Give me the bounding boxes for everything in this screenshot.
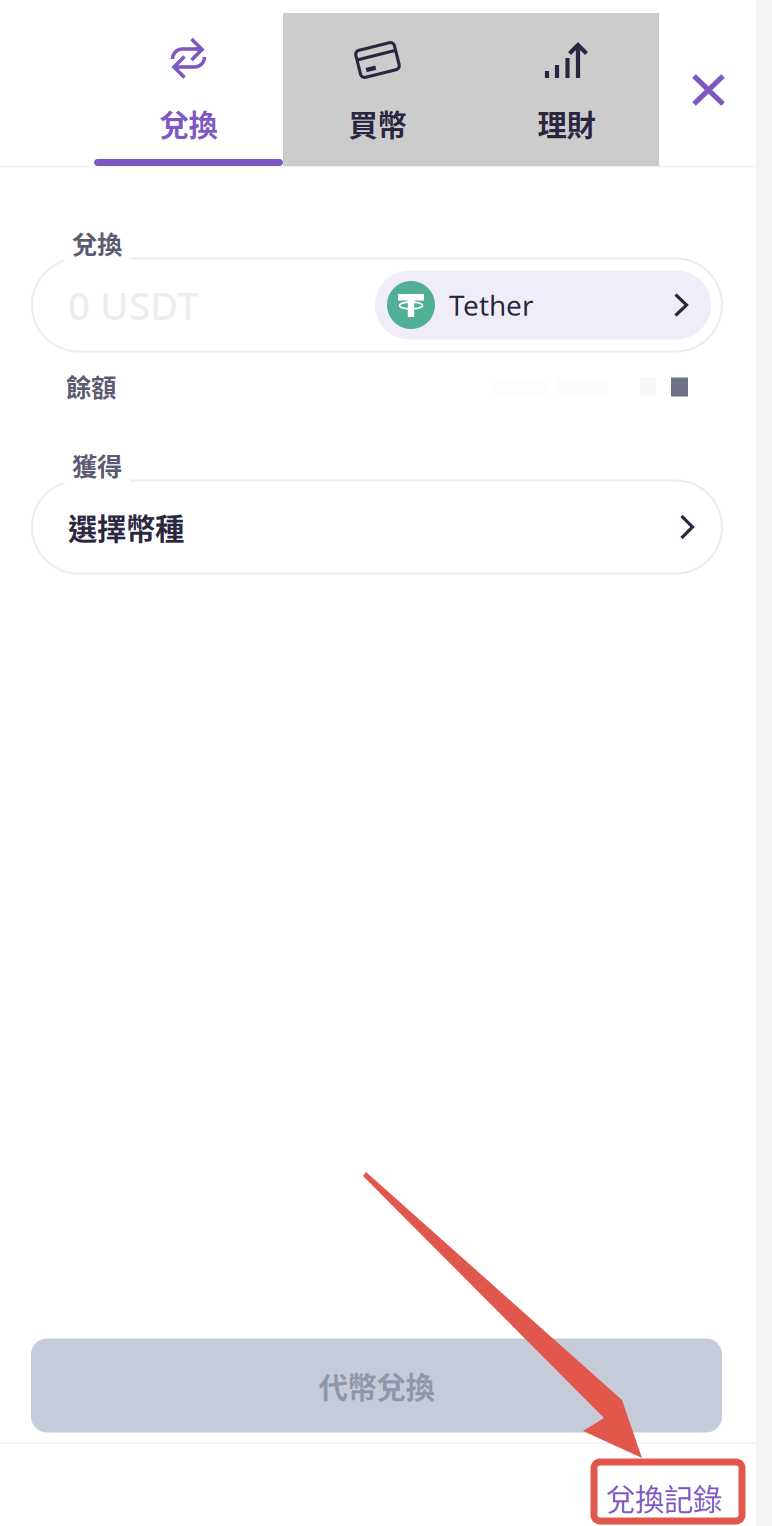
button[interactable]: 兌換 <box>94 0 283 166</box>
staticText: 兌換記錄 <box>606 1476 722 1519</box>
button[interactable]: 買幣 <box>283 0 472 166</box>
staticText: 獲得 <box>72 446 122 483</box>
button[interactable]: Close <box>661 0 756 166</box>
staticText: 餘額 <box>66 367 116 404</box>
button[interactable]: Tether <box>375 270 711 339</box>
staticText: 理財 <box>537 102 595 144</box>
staticText: 兌換 <box>72 224 122 261</box>
staticText: Tether <box>449 286 534 324</box>
button[interactable]: 兌換記錄 <box>606 1477 746 1517</box>
staticText: 兌換 <box>159 102 217 144</box>
staticText: 代幣兌換 <box>318 1364 434 1407</box>
staticText: 選擇幣種 <box>68 506 184 548</box>
button[interactable]: 理財 <box>472 0 661 166</box>
staticText: 0 USDT <box>68 279 199 331</box>
button[interactable]: 代幣兌換 <box>31 1338 722 1432</box>
staticText: 買幣 <box>348 102 406 144</box>
